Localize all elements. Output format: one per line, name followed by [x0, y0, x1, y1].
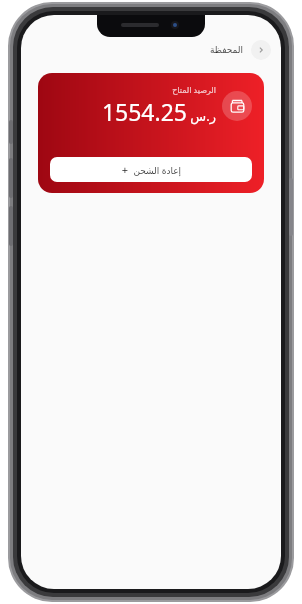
- staticText: 1554.25: [101, 96, 187, 127]
- button[interactable]: +: [50, 157, 252, 182]
- staticText: إعادة الشحن: [133, 164, 181, 176]
- staticText: المحفظة: [209, 45, 243, 55]
- button[interactable]: Wallet: [222, 91, 252, 121]
- button[interactable]: Back: [251, 40, 271, 60]
- staticText: ر.س: [190, 107, 216, 125]
- button[interactable]: الرصيد المتاح: [38, 73, 264, 193]
- staticText: +: [121, 162, 128, 177]
- staticText: الرصيد المتاح: [172, 84, 216, 95]
